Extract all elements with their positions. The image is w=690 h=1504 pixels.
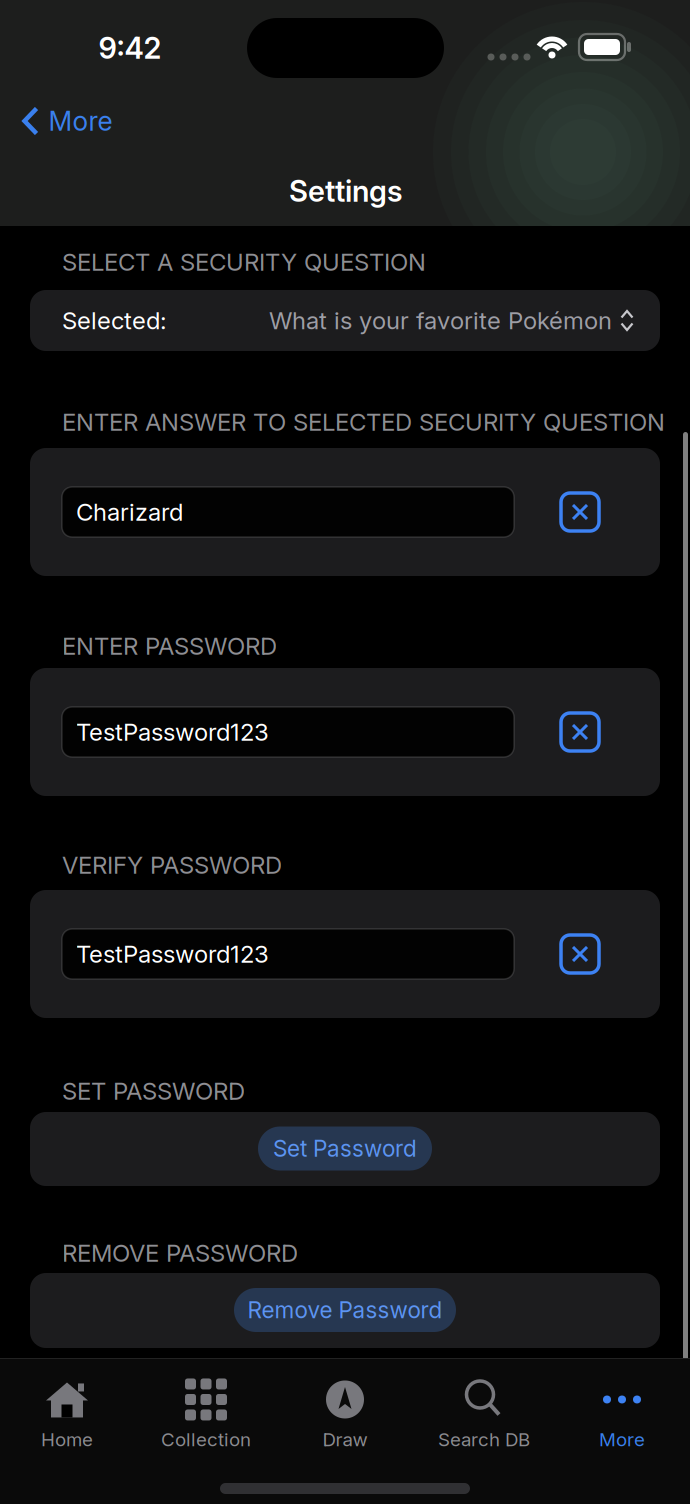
staticText: SET PASSWORD	[62, 1077, 245, 1105]
button[interactable]: Draw	[280, 1379, 410, 1451]
button[interactable]: TestPassword123	[62, 707, 514, 757]
staticText: Selected:	[62, 306, 167, 335]
staticText: Search DB	[438, 1428, 530, 1450]
button[interactable]: Set Password	[258, 1126, 432, 1170]
staticText: REMOVE PASSWORD	[62, 1239, 298, 1267]
button[interactable]: Remove Password	[234, 1288, 456, 1332]
staticText: 9:42	[98, 31, 161, 65]
staticText: Set Password	[273, 1135, 417, 1162]
staticText: More	[599, 1428, 645, 1450]
staticText: Charizard	[76, 498, 183, 526]
staticText: Remove Password	[247, 1297, 442, 1323]
staticText: SELECT A SECURITY QUESTION	[62, 248, 426, 276]
button[interactable]: Clear text	[561, 493, 599, 531]
button[interactable]: Charizard	[62, 487, 514, 537]
staticText: VERIFY PASSWORD	[62, 851, 282, 879]
staticText: What is your favorite Pokémon	[269, 306, 612, 335]
staticText: ENTER ANSWER TO SELECTED SECURITY QUESTI…	[62, 408, 665, 436]
button[interactable]: Search DB	[419, 1379, 549, 1451]
button[interactable]: Collection	[141, 1379, 271, 1451]
button[interactable]: More	[557, 1379, 687, 1451]
staticText: Home	[41, 1428, 93, 1450]
button[interactable]: Back	[21, 105, 112, 137]
staticText: Draw	[322, 1428, 367, 1450]
button[interactable]: Clear text	[561, 935, 599, 973]
staticText: TestPassword123	[76, 718, 269, 746]
staticText: ENTER PASSWORD	[62, 632, 277, 660]
button[interactable]: TestPassword123	[62, 929, 514, 979]
button[interactable]: Selected:	[30, 290, 660, 351]
staticText: More	[48, 105, 112, 137]
staticText: Collection	[161, 1428, 251, 1450]
button[interactable]: Clear text	[561, 713, 599, 751]
staticText: TestPassword123	[76, 940, 269, 968]
staticText: Settings	[289, 174, 403, 208]
button[interactable]: Home	[2, 1379, 132, 1451]
